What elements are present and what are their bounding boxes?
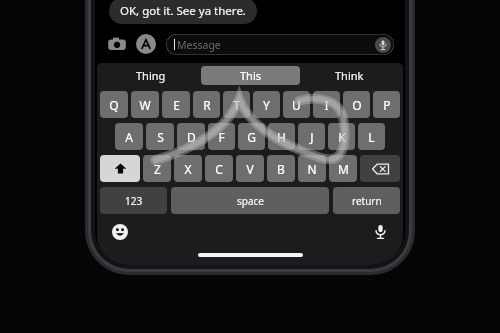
- staticText: P: [383, 97, 391, 113]
- button[interactable]: Z: [143, 155, 171, 182]
- staticText: N: [307, 161, 317, 177]
- staticText: D: [187, 129, 196, 145]
- button[interactable]: I: [313, 91, 340, 118]
- button[interactable]: T: [223, 91, 250, 118]
- staticText: OK, got it. See ya there.: [120, 3, 246, 19]
- staticText: 123: [125, 194, 143, 208]
- staticText: Message: [177, 38, 221, 52]
- button[interactable]: Think: [300, 63, 399, 88]
- staticText: return: [352, 194, 382, 208]
- button[interactable]: Dictate: [375, 37, 391, 53]
- staticText: T: [233, 97, 240, 113]
- staticText: C: [215, 161, 223, 177]
- staticText: H: [277, 129, 286, 145]
- staticText: space: [237, 194, 264, 208]
- button[interactable]: Y: [253, 91, 280, 118]
- staticText: E: [173, 97, 180, 113]
- button[interactable]: H: [268, 123, 295, 150]
- button[interactable]: Apps: [135, 33, 157, 55]
- button[interactable]: X: [174, 155, 202, 182]
- staticText: L: [368, 129, 375, 145]
- button[interactable]: Q: [100, 91, 128, 118]
- staticText: Q: [109, 97, 119, 113]
- button[interactable]: Shift: [100, 155, 140, 182]
- button[interactable]: W: [131, 91, 159, 118]
- button[interactable]: F: [208, 123, 235, 150]
- button[interactable]: Backspace: [360, 155, 400, 182]
- button[interactable]: B: [267, 155, 295, 182]
- staticText: V: [246, 161, 254, 177]
- staticText: R: [203, 97, 211, 113]
- button[interactable]: C: [205, 155, 233, 182]
- button[interactable]: N: [298, 155, 326, 182]
- button[interactable]: J: [298, 123, 325, 150]
- staticText: Y: [263, 97, 270, 113]
- button[interactable]: E: [162, 91, 190, 118]
- staticText: O: [352, 97, 362, 113]
- staticText: S: [157, 129, 164, 145]
- staticText: B: [277, 161, 285, 177]
- button[interactable]: A: [115, 123, 143, 150]
- button[interactable]: L: [358, 123, 385, 150]
- button[interactable]: O: [343, 91, 370, 118]
- button[interactable]: Thing: [101, 63, 201, 88]
- button[interactable]: G: [238, 123, 265, 150]
- staticText: W: [139, 97, 151, 113]
- button[interactable]: R: [193, 91, 220, 118]
- button[interactable]: Emoji: [111, 223, 129, 241]
- button[interactable]: OK, got it. See ya there.: [109, 0, 257, 24]
- button[interactable]: This: [201, 66, 300, 85]
- button[interactable]: P: [373, 91, 400, 118]
- staticText: A: [125, 129, 133, 145]
- button[interactable]: Message: [166, 34, 394, 55]
- staticText: Thing: [136, 68, 166, 83]
- staticText: J: [310, 129, 314, 145]
- staticText: I: [324, 97, 329, 113]
- button[interactable]: U: [283, 91, 310, 118]
- button[interactable]: 123: [100, 187, 167, 214]
- button[interactable]: return: [333, 187, 400, 214]
- staticText: F: [218, 129, 225, 145]
- button[interactable]: K: [328, 123, 355, 150]
- button[interactable]: M: [329, 155, 357, 182]
- button[interactable]: Camera: [106, 33, 128, 55]
- staticText: U: [292, 97, 301, 113]
- staticText: X: [184, 161, 192, 177]
- staticText: This: [240, 68, 262, 83]
- staticText: Z: [154, 161, 161, 177]
- button[interactable]: D: [177, 123, 205, 150]
- button[interactable]: Dictation: [371, 222, 389, 240]
- staticText: K: [338, 129, 346, 145]
- button[interactable]: space: [171, 187, 329, 214]
- button[interactable]: V: [236, 155, 264, 182]
- staticText: M: [338, 161, 349, 177]
- staticText: Think: [335, 68, 364, 83]
- staticText: G: [247, 129, 256, 145]
- button[interactable]: S: [146, 123, 174, 150]
